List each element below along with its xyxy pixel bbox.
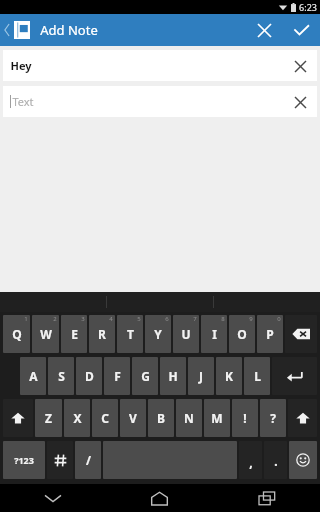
staticText: 2	[53, 315, 57, 323]
staticText: I	[212, 326, 217, 342]
button[interactable]: S	[48, 357, 74, 395]
staticText: U	[181, 326, 191, 342]
staticText: T	[127, 326, 134, 342]
staticText: Hey	[10, 58, 32, 73]
staticText: R	[98, 326, 106, 342]
button[interactable]: ?	[260, 399, 286, 437]
button[interactable]: Save note	[282, 14, 320, 46]
button[interactable]: Emoji	[289, 441, 317, 479]
staticText: /	[86, 452, 91, 468]
button[interactable]: U	[173, 315, 199, 353]
button[interactable]: V	[120, 399, 146, 437]
button[interactable]: Period	[264, 441, 287, 479]
staticText: S	[58, 368, 65, 384]
staticText: K	[225, 368, 233, 384]
button[interactable]: K	[216, 357, 242, 395]
button[interactable]: X	[64, 399, 90, 437]
staticText: X	[73, 410, 82, 426]
button[interactable]: F	[104, 357, 130, 395]
button[interactable]: Clear text	[287, 89, 313, 115]
button[interactable]: T	[117, 315, 143, 353]
button[interactable]: C	[92, 399, 118, 437]
button[interactable]: A	[20, 357, 46, 395]
button[interactable]: Hey	[3, 50, 317, 81]
staticText: V	[129, 410, 137, 426]
staticText: 1	[24, 315, 28, 323]
staticText: W	[40, 326, 52, 342]
button[interactable]: D	[76, 357, 102, 395]
button[interactable]: B	[148, 399, 174, 437]
button[interactable]: I	[201, 315, 227, 353]
staticText: 8	[221, 315, 225, 323]
staticText: M	[211, 410, 223, 426]
staticText: ?	[270, 410, 276, 426]
staticText: F	[114, 368, 121, 384]
staticText: C	[101, 410, 109, 426]
staticText: G	[141, 368, 150, 384]
button[interactable]: L	[244, 357, 270, 395]
staticText: 6	[165, 315, 169, 323]
button[interactable]: J	[188, 357, 214, 395]
button[interactable]: Shift	[3, 399, 33, 437]
staticText: A	[29, 368, 38, 384]
button[interactable]: /	[75, 441, 101, 479]
staticText: 6:23	[299, 1, 317, 13]
button[interactable]: Q	[3, 315, 30, 353]
button[interactable]: M	[204, 399, 230, 437]
staticText: E	[71, 326, 78, 342]
staticText: O	[237, 326, 247, 342]
staticText: ?123	[14, 454, 34, 466]
button[interactable]: N	[176, 399, 202, 437]
button[interactable]: Navigate up	[0, 14, 34, 46]
button[interactable]: Discard	[246, 14, 282, 46]
staticText: 0	[277, 315, 281, 323]
staticText: L	[254, 368, 261, 384]
staticText: N	[184, 410, 194, 426]
button[interactable]: E	[61, 315, 87, 353]
staticText: B	[157, 410, 165, 426]
staticText: J	[199, 368, 203, 384]
button[interactable]: Switch language	[47, 441, 73, 479]
button[interactable]: ?123	[3, 441, 45, 479]
button[interactable]: Y	[145, 315, 171, 353]
button[interactable]: G	[132, 357, 158, 395]
button[interactable]: W	[32, 315, 59, 353]
button[interactable]: H	[160, 357, 186, 395]
button[interactable]: O	[229, 315, 255, 353]
staticText: Z	[45, 410, 52, 426]
staticText: Text	[12, 94, 34, 109]
button[interactable]: P	[257, 315, 283, 353]
button[interactable]: Clear text	[287, 53, 313, 79]
staticText: H	[168, 368, 178, 384]
button[interactable]: Recent apps	[213, 484, 320, 512]
staticText: 4	[109, 315, 113, 323]
button[interactable]: R	[89, 315, 115, 353]
button[interactable]: Shift	[288, 399, 317, 437]
button[interactable]: !	[232, 399, 258, 437]
button[interactable]: Enter	[272, 357, 317, 395]
button[interactable]: Hide keyboard	[0, 484, 106, 512]
staticText: 3	[81, 315, 85, 323]
staticText: !	[243, 410, 247, 426]
staticText: P	[266, 326, 274, 342]
staticText: 5	[137, 315, 141, 323]
button[interactable]: Text	[3, 86, 317, 117]
staticText: .	[274, 453, 278, 469]
button[interactable]: Backspace	[285, 315, 317, 353]
staticText: 7	[193, 315, 197, 323]
staticText: Q	[12, 326, 22, 342]
button[interactable]: Z	[35, 399, 62, 437]
staticText: Add Note	[40, 21, 98, 39]
staticText: ,	[249, 454, 253, 470]
button[interactable]: Comma	[239, 441, 262, 479]
staticText: Y	[154, 326, 162, 342]
staticText: D	[85, 368, 94, 384]
staticText: 9	[249, 315, 253, 323]
button[interactable]: Home	[106, 484, 213, 512]
